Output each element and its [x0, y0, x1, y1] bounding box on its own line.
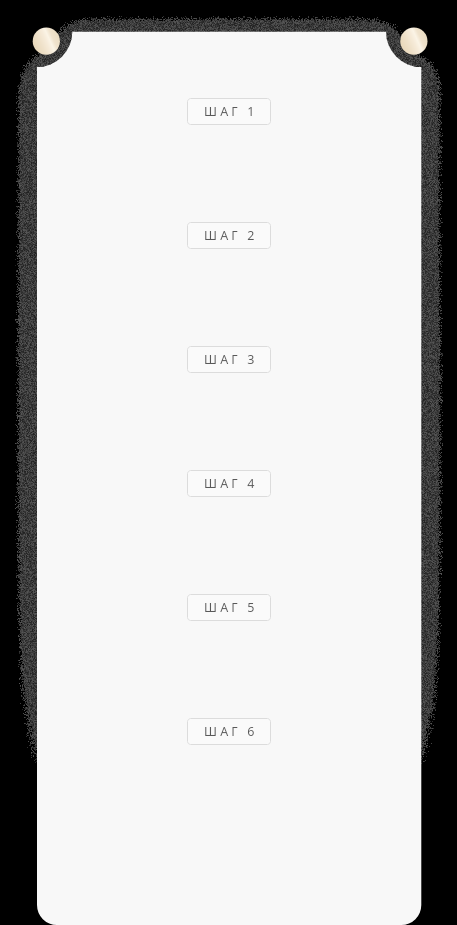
- staticText: ШАГ 2: [204, 227, 258, 244]
- staticText: ШАГ 6: [204, 723, 258, 740]
- staticText: ШАГ 1: [204, 103, 258, 120]
- staticText: ШАГ 5: [204, 599, 258, 616]
- staticText: ШАГ 3: [204, 351, 258, 368]
- button[interactable]: ШАГ 3: [187, 346, 271, 373]
- button[interactable]: ШАГ 2: [187, 222, 271, 249]
- button[interactable]: ШАГ 1: [187, 98, 271, 125]
- button[interactable]: ШАГ 5: [187, 594, 271, 621]
- button[interactable]: ШАГ 4: [187, 470, 271, 497]
- staticText: ШАГ 4: [204, 475, 258, 492]
- button[interactable]: ШАГ 6: [187, 718, 271, 745]
